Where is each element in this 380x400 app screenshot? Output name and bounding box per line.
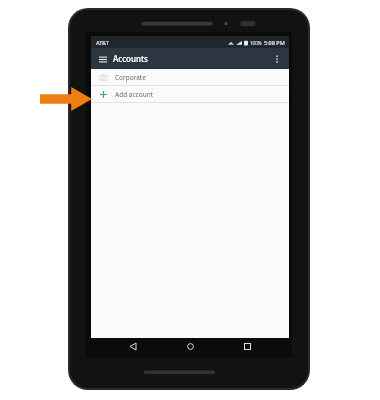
staticText: 100% xyxy=(250,40,262,46)
button[interactable]: More options xyxy=(269,51,285,67)
staticText: AT&T xyxy=(96,39,109,46)
staticText: Add account xyxy=(115,90,154,99)
button[interactable]: Back xyxy=(118,338,148,354)
button[interactable]: Add account xyxy=(91,86,289,102)
button[interactable]: Home xyxy=(175,338,205,354)
button[interactable]: Recent apps xyxy=(232,338,262,354)
button[interactable]: Corporate xyxy=(91,69,289,85)
button[interactable]: Open navigation drawer xyxy=(95,51,111,67)
staticText: Corporate xyxy=(115,73,146,82)
staticText: 5:08 PM xyxy=(264,39,285,46)
staticText: Accounts xyxy=(113,53,148,64)
